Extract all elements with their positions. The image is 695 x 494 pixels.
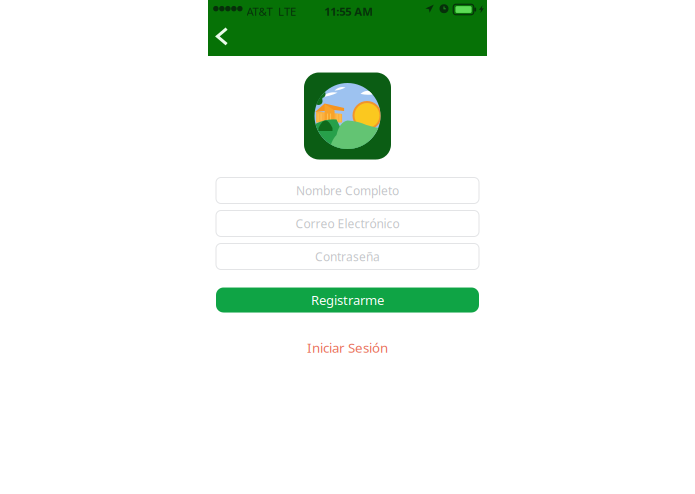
staticText: 11:55 AM [324, 4, 373, 19]
staticText: AT&T [247, 4, 273, 19]
button[interactable]: Registrarme [216, 287, 479, 312]
staticText: Contraseña [315, 248, 380, 265]
button[interactable]: Correo Electrónico [216, 210, 479, 236]
button[interactable]: Contraseña [216, 243, 479, 269]
staticText: Iniciar Sesión [307, 338, 388, 357]
staticText: Correo Electrónico [295, 215, 399, 232]
button[interactable]: Iniciar Sesión [287, 335, 407, 359]
button[interactable]: Nombre Completo [216, 177, 479, 203]
staticText: Registrarme [311, 291, 384, 309]
staticText: Nombre Completo [296, 182, 399, 199]
button[interactable]: Back [208, 20, 238, 56]
staticText: LTE [278, 4, 296, 19]
